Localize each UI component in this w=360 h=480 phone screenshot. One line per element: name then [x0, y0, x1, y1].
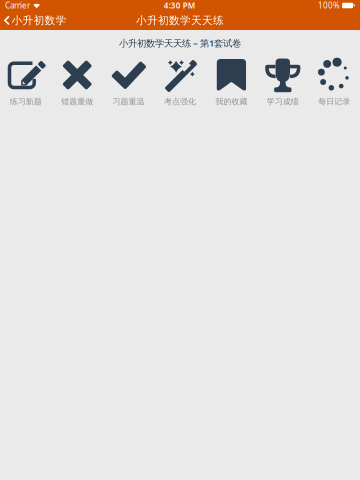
staticText: 学习成绩: [267, 97, 299, 106]
button[interactable]: 学习成绩: [257, 58, 308, 106]
staticText: 4:30 PM: [164, 0, 195, 11]
staticText: 每日记录: [318, 97, 350, 106]
button[interactable]: 练习新题: [0, 58, 51, 106]
button[interactable]: 错题重做: [51, 58, 103, 106]
button[interactable]: 每日记录: [308, 58, 360, 106]
staticText: 小升初数学天天练: [136, 14, 224, 27]
button[interactable]: 小升初数学: [0, 11, 70, 30]
button[interactable]: 我的收藏: [206, 58, 257, 106]
staticText: 小升初数学天天练 – 第1套试卷: [119, 37, 241, 49]
staticText: 小升初数学: [11, 14, 66, 27]
staticText: Carrier: [5, 0, 30, 11]
staticText: 练习新题: [10, 97, 42, 106]
staticText: 100%: [318, 0, 340, 11]
staticText: 考点强化: [164, 97, 196, 106]
staticText: 习题重温: [113, 97, 145, 106]
staticText: 我的收藏: [215, 97, 247, 106]
button[interactable]: 考点强化: [154, 58, 206, 106]
staticText: 错题重做: [61, 97, 93, 106]
button[interactable]: 习题重温: [103, 58, 154, 106]
